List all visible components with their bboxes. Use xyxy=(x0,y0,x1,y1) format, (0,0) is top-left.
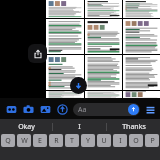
button[interactable]: Share xyxy=(28,44,47,63)
button[interactable] xyxy=(123,0,160,18)
button[interactable]: E xyxy=(33,134,47,147)
staticText: T xyxy=(70,136,74,146)
button[interactable] xyxy=(85,55,122,90)
staticText: U xyxy=(101,136,107,146)
button[interactable] xyxy=(123,19,160,54)
button[interactable]: P xyxy=(145,134,159,147)
staticText: P xyxy=(150,136,155,146)
button[interactable]: Menu xyxy=(144,103,157,116)
button[interactable]: O xyxy=(129,134,143,147)
button[interactable] xyxy=(46,55,84,90)
button[interactable] xyxy=(123,55,160,90)
button[interactable]: Send xyxy=(128,104,139,115)
button[interactable]: W xyxy=(17,134,31,147)
button[interactable] xyxy=(46,0,84,18)
staticText: E xyxy=(38,136,42,146)
button[interactable]: I xyxy=(113,134,127,147)
button[interactable]: Okay xyxy=(0,119,52,134)
button[interactable]: Thanks xyxy=(107,119,160,134)
staticText: Y xyxy=(86,136,90,146)
button[interactable]: Photos xyxy=(38,102,52,116)
staticText: O xyxy=(133,136,139,146)
button[interactable]: R xyxy=(49,134,63,147)
button[interactable]: T xyxy=(65,134,79,147)
staticText: Aa xyxy=(78,105,87,115)
staticText: R xyxy=(54,136,59,146)
staticText: I xyxy=(78,122,81,132)
button[interactable] xyxy=(46,19,84,54)
button[interactable]: Download xyxy=(70,77,87,94)
button[interactable]: I xyxy=(53,119,106,134)
button[interactable]: U xyxy=(97,134,111,147)
button[interactable]: Camera xyxy=(21,102,35,116)
button[interactable] xyxy=(123,91,160,98)
staticText: Okay xyxy=(18,122,35,132)
button[interactable] xyxy=(85,0,122,18)
button[interactable] xyxy=(46,91,84,98)
button[interactable] xyxy=(85,19,122,54)
staticText: I xyxy=(119,136,122,146)
button[interactable]: Aa xyxy=(73,103,140,116)
button[interactable]: Q xyxy=(1,134,15,147)
staticText: Q xyxy=(5,136,11,146)
staticText: Thanks xyxy=(122,122,146,132)
button[interactable]: Y xyxy=(81,134,95,147)
button[interactable]: App Store xyxy=(4,102,18,116)
button[interactable] xyxy=(85,91,122,98)
button[interactable]: More apps xyxy=(55,102,69,116)
staticText: W xyxy=(21,136,28,146)
